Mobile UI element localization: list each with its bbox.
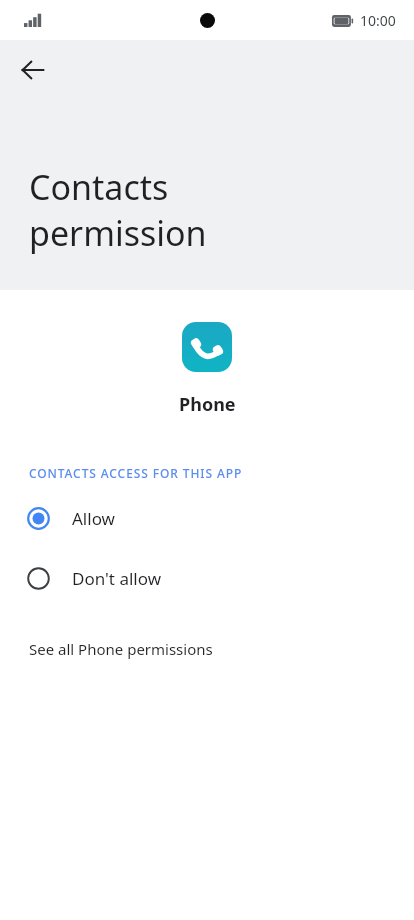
staticText: Phone bbox=[179, 392, 236, 417]
button[interactable]: Back bbox=[13, 50, 53, 90]
button[interactable]: Don't allow bbox=[0, 557, 414, 599]
button[interactable]: See all Phone permissions bbox=[0, 631, 414, 667]
staticText: 10:00 bbox=[360, 11, 396, 30]
staticText: Allow bbox=[72, 507, 115, 530]
staticText: permission bbox=[29, 210, 207, 256]
button[interactable]: Allow bbox=[0, 497, 414, 539]
staticText: Contacts bbox=[29, 164, 169, 210]
staticText: Don't allow bbox=[72, 567, 162, 590]
staticText: See all Phone permissions bbox=[29, 639, 213, 659]
staticText: CONTACTS ACCESS FOR THIS APP bbox=[29, 465, 243, 481]
